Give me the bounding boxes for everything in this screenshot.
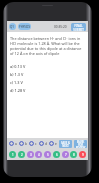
- staticText: SAVE & NEXT: [61, 141, 70, 148]
- staticText: The distance between H⁺ and Cl⁻ ions in …: [10, 36, 85, 56]
- button[interactable]: a) 0.13 V: [10, 62, 85, 70]
- button[interactable]: d) 1.28 V: [10, 86, 85, 94]
- button[interactable]: MARK FOR REVIEW: [74, 140, 87, 148]
- button[interactable]: a: [9, 141, 17, 146]
- button[interactable]: b) 1.3 V: [10, 70, 85, 78]
- button[interactable]: PHYSICS: [18, 23, 31, 30]
- button[interactable]: FINAL SUBMIT: [71, 23, 86, 31]
- button[interactable]: 6: [53, 151, 60, 158]
- staticText: 4: [38, 153, 40, 157]
- staticText: 9: [82, 153, 84, 157]
- button[interactable]: 7: [62, 151, 69, 158]
- staticText: 1: [12, 153, 14, 157]
- staticText: d) 1.28 V: [10, 88, 26, 93]
- button[interactable]: 5: [44, 151, 51, 158]
- button[interactable]: d: [39, 141, 47, 146]
- button[interactable]: 3: [27, 151, 34, 158]
- button[interactable]: b: [19, 141, 27, 146]
- staticText: a) 0.13 V: [10, 64, 26, 69]
- staticText: 5: [47, 153, 49, 157]
- button[interactable]: 8: [70, 151, 77, 158]
- button[interactable]: 9: [79, 151, 86, 158]
- staticText: PHYSICS: [19, 25, 31, 29]
- button[interactable]: SAVE & NEXT: [59, 140, 72, 148]
- staticText: d: [45, 142, 47, 146]
- staticText: 3: [30, 153, 32, 157]
- staticText: b: [25, 142, 27, 146]
- staticText: 2: [21, 153, 23, 157]
- button[interactable]: Q1: [9, 23, 16, 30]
- staticText: e: [55, 142, 57, 146]
- staticText: a: [15, 142, 17, 146]
- staticText: 6: [56, 153, 58, 157]
- staticText: c) 1.3 V: [10, 80, 23, 85]
- button[interactable]: 4: [35, 151, 42, 158]
- button[interactable]: c) 1.3 V: [10, 78, 85, 86]
- button[interactable]: c: [29, 141, 37, 146]
- button[interactable]: e: [49, 141, 57, 146]
- button[interactable]: 2: [18, 151, 25, 158]
- staticText: FINAL SUBMIT: [73, 24, 84, 31]
- staticText: c: [35, 142, 37, 146]
- button[interactable]: 1: [9, 151, 16, 158]
- staticText: 00:35:20: [54, 25, 67, 29]
- staticText: 7: [65, 153, 67, 157]
- staticText: MARK FOR REVIEW: [74, 140, 87, 148]
- staticText: 8: [73, 153, 75, 157]
- staticText: b) 1.3 V: [10, 72, 24, 77]
- staticText: Q1: [10, 25, 15, 29]
